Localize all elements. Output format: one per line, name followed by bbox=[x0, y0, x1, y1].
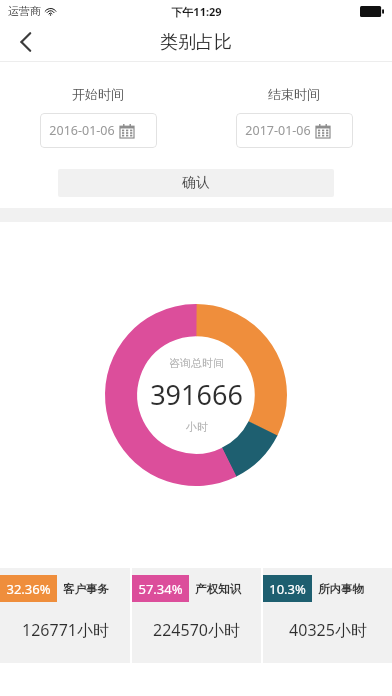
button[interactable]: Back bbox=[0, 22, 52, 62]
staticText: 类别占比 bbox=[160, 31, 232, 54]
staticText: 32.36% bbox=[6, 580, 51, 598]
staticText: 客户事务 bbox=[63, 582, 109, 596]
staticText: 下午11:29 bbox=[171, 4, 222, 19]
staticText: 391666 bbox=[150, 376, 243, 413]
button[interactable]: 2016-01-06 bbox=[40, 113, 157, 148]
staticText: 结束时间 bbox=[268, 86, 320, 102]
staticText: 2016-01-06 bbox=[49, 122, 115, 139]
staticText: 126771小时 bbox=[22, 619, 109, 641]
staticText: 57.34% bbox=[138, 580, 183, 598]
button[interactable]: 57.34% bbox=[132, 568, 261, 663]
staticText: 小时 bbox=[186, 420, 208, 434]
button[interactable]: 32.36% bbox=[0, 568, 130, 663]
button[interactable]: 2017-01-06 bbox=[236, 113, 353, 148]
staticText: 运营商 bbox=[8, 4, 41, 18]
staticText: 40325小时 bbox=[289, 619, 367, 641]
button[interactable]: 确认 bbox=[58, 169, 334, 197]
staticText: 224570小时 bbox=[153, 619, 240, 641]
staticText: 咨询总时间 bbox=[169, 356, 224, 370]
button[interactable]: 10.3% bbox=[263, 568, 392, 663]
staticText: 产权知识 bbox=[195, 582, 241, 596]
staticText: 确认 bbox=[182, 174, 210, 192]
staticText: 10.3% bbox=[269, 580, 306, 598]
staticText: 开始时间 bbox=[72, 86, 124, 102]
staticText: 2017-01-06 bbox=[245, 122, 311, 139]
staticText: 所内事物 bbox=[318, 582, 364, 596]
